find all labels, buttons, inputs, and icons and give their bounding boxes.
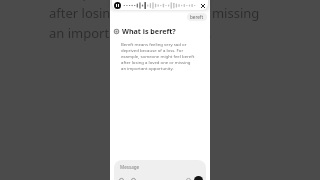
button[interactable]: Pause bbox=[114, 2, 121, 9]
staticText: Message bbox=[120, 164, 140, 170]
staticText: What is bereft? bbox=[122, 26, 176, 36]
button[interactable]: Attach bbox=[118, 177, 125, 180]
staticText: Bereft means feeling very sad or deprive… bbox=[121, 41, 196, 71]
button[interactable]: Message bbox=[114, 160, 206, 180]
button[interactable]: bereft bbox=[187, 13, 207, 21]
staticText: example, someone might feel bereft after… bbox=[49, 0, 271, 42]
button[interactable]: Close bbox=[199, 2, 206, 9]
button[interactable]: Send bbox=[194, 176, 203, 180]
button[interactable]: Pause bbox=[112, 0, 208, 10]
staticText: bereft bbox=[190, 14, 204, 20]
button[interactable]: Camera bbox=[130, 177, 137, 180]
button[interactable]: Gallery bbox=[185, 177, 192, 180]
